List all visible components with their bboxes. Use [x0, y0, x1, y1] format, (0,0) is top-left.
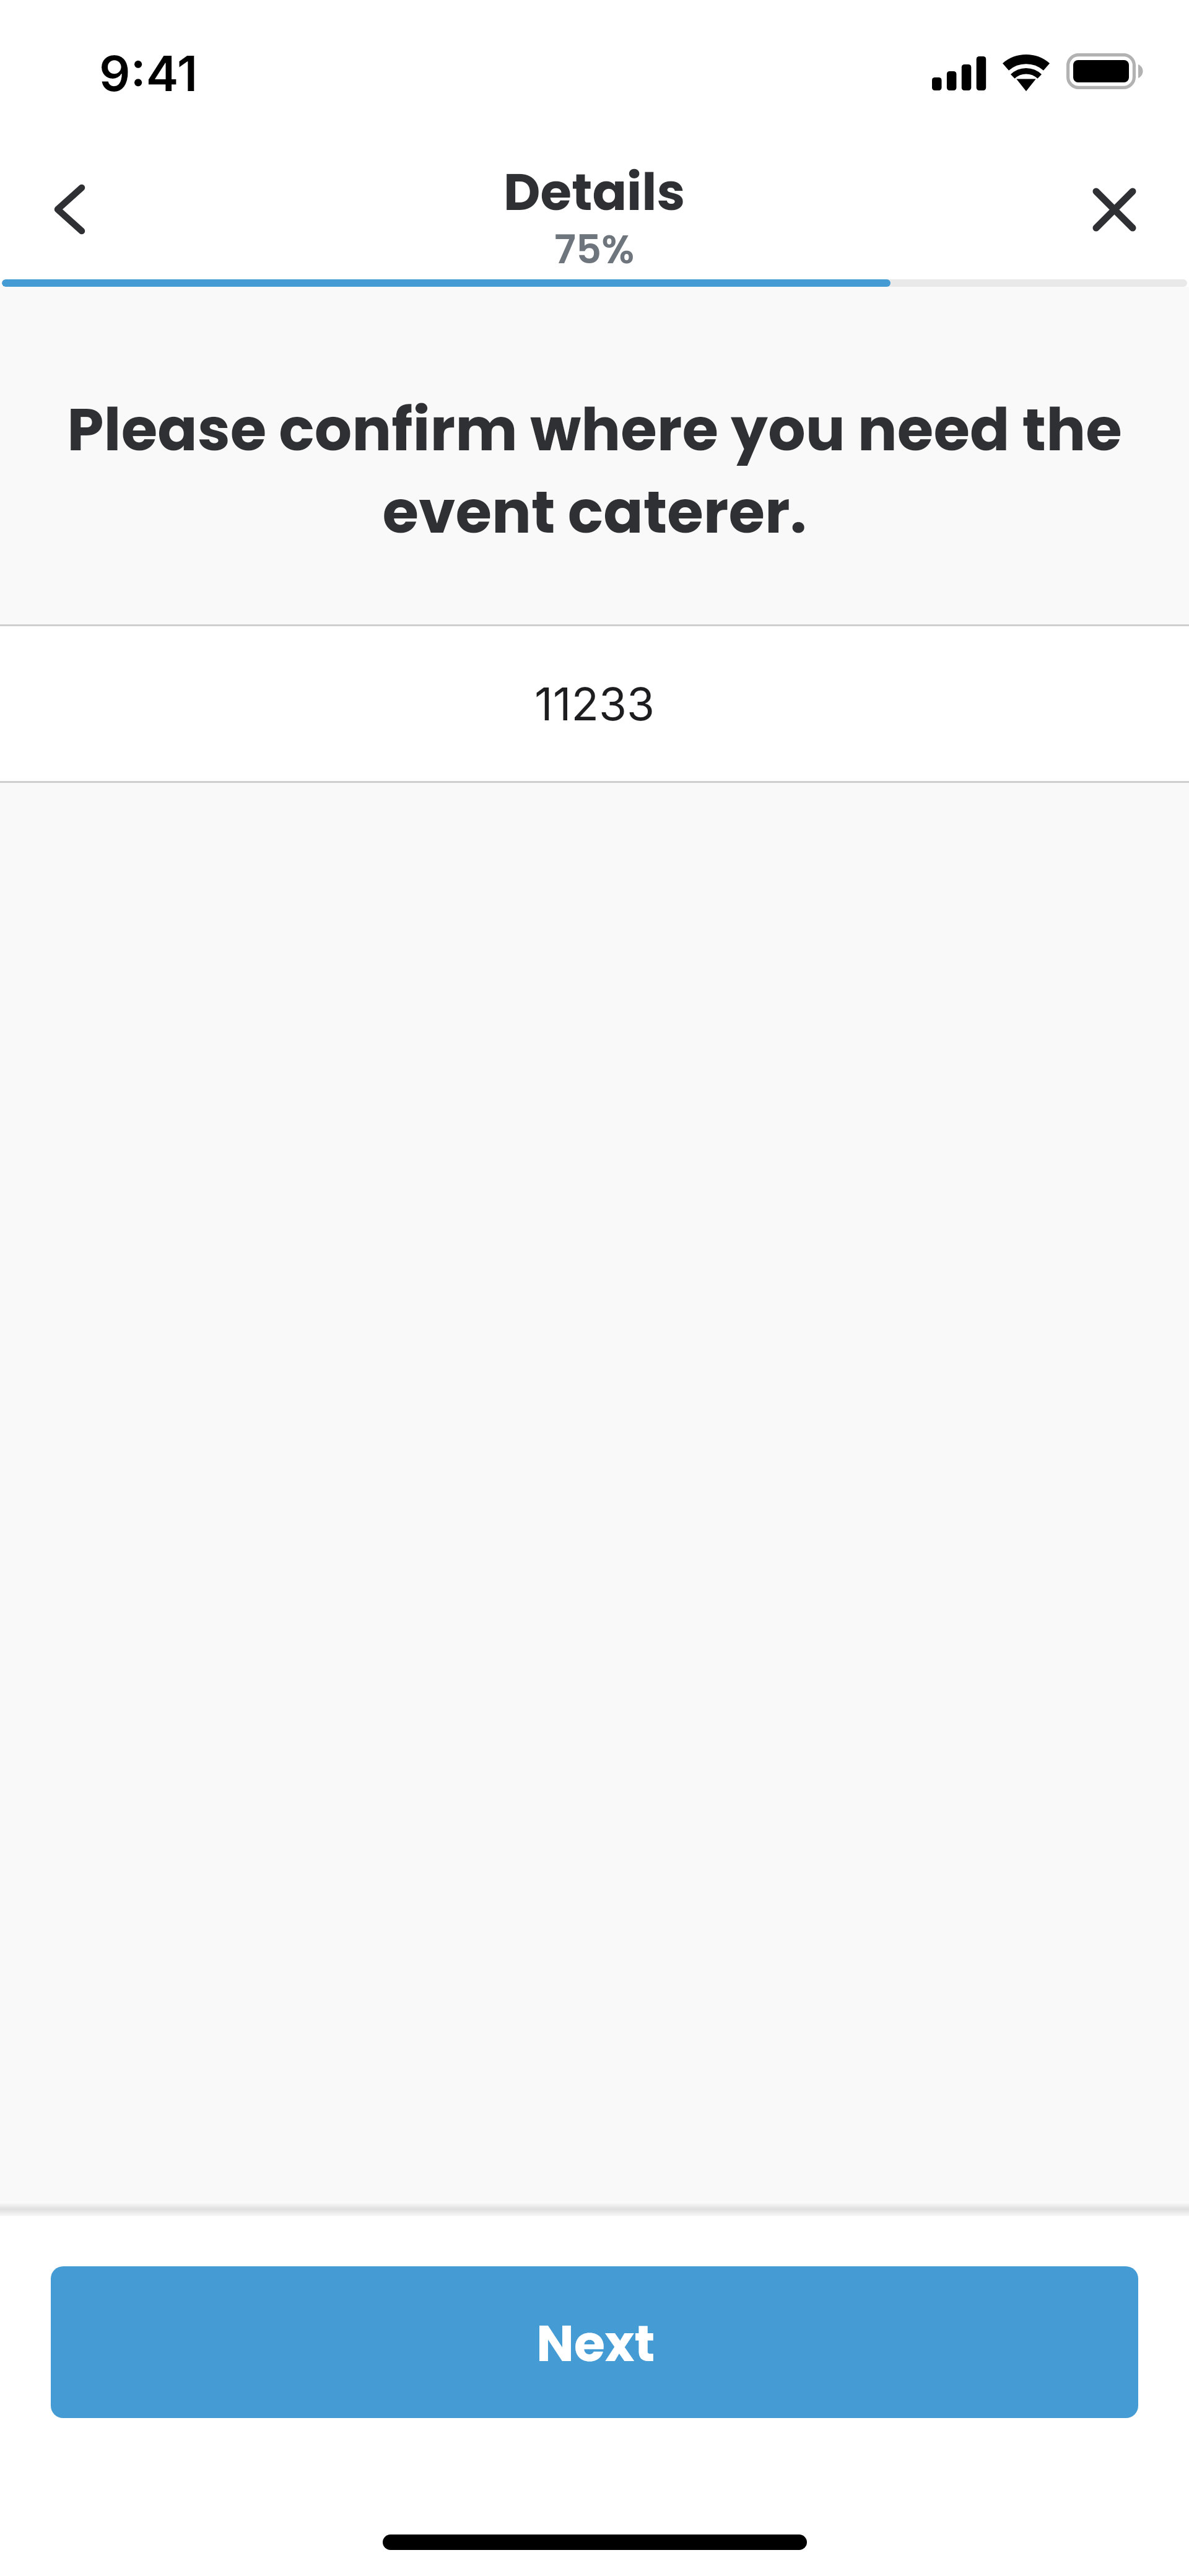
button[interactable]: Next: [51, 2266, 1138, 2418]
staticText: Details: [503, 157, 686, 228]
staticText: 9:41: [99, 43, 198, 103]
button[interactable]: 11233: [0, 626, 1189, 781]
button[interactable]: Close: [1078, 173, 1151, 246]
button[interactable]: Back: [41, 169, 97, 250]
staticText: 11233: [534, 676, 655, 731]
staticText: 75%: [554, 222, 635, 277]
staticText: Please confirm where you need the event …: [34, 388, 1155, 554]
staticText: Next: [536, 2308, 655, 2378]
